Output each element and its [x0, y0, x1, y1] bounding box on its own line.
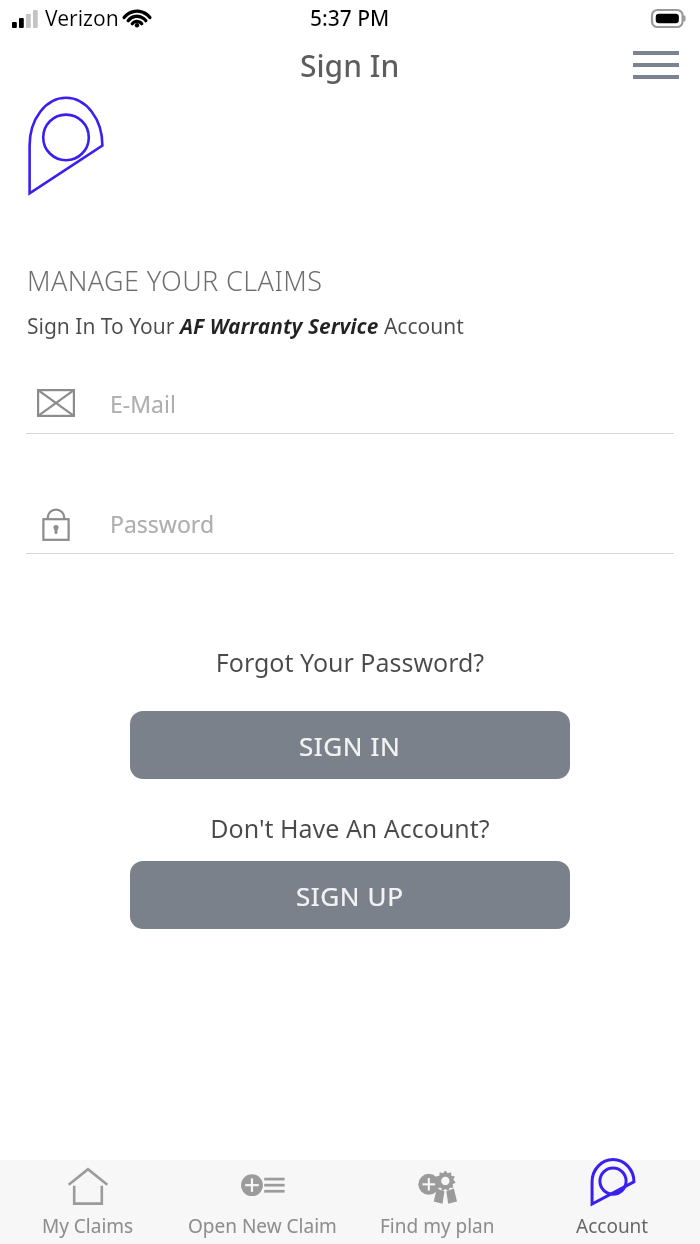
staticText: Don't Have An Account?: [0, 811, 700, 845]
staticText: 5:37 PM: [310, 4, 390, 33]
staticText: SIGN UP: [296, 878, 404, 913]
staticText: E-Mail: [110, 388, 176, 419]
staticText: My Claims: [42, 1213, 134, 1239]
button[interactable]: Password: [26, 501, 674, 545]
staticText: MANAGE YOUR CLAIMS: [27, 262, 323, 299]
button[interactable]: SIGN IN: [130, 711, 570, 779]
staticText: Forgot Your Password?: [0, 645, 700, 679]
staticText: Verizon: [45, 4, 119, 33]
staticText: Sign In: [300, 45, 400, 86]
button[interactable]: SIGN UP: [130, 861, 570, 929]
button[interactable]: Open New Claim: [175, 1160, 350, 1244]
staticText: Open New Claim: [188, 1213, 337, 1239]
staticText: Sign In To Your AF Warranty Service Acco…: [27, 312, 464, 341]
staticText: Password: [110, 508, 215, 539]
button[interactable]: Find my plan: [350, 1160, 525, 1244]
staticText: Find my plan: [380, 1213, 495, 1239]
button[interactable]: My Claims: [0, 1160, 175, 1244]
button[interactable]: E-Mail: [26, 381, 674, 425]
staticText: Account: [576, 1213, 649, 1239]
staticText: SIGN IN: [299, 728, 401, 763]
button[interactable]: Menu: [628, 37, 684, 93]
button[interactable]: Account: [525, 1160, 700, 1244]
